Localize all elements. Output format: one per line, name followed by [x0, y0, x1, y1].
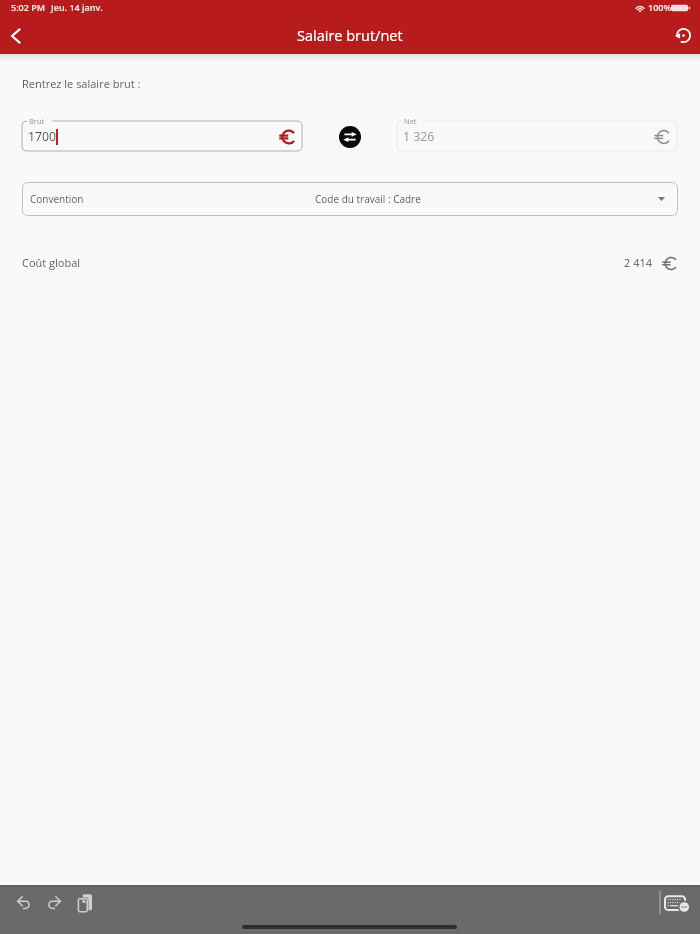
button[interactable]: Swap brut and net [339, 126, 361, 148]
staticText: Convention [30, 192, 84, 206]
staticText: 1 326 [403, 128, 435, 145]
button[interactable]: Undo [10, 889, 38, 917]
button[interactable]: Clipboard [71, 889, 99, 917]
staticText: Code du travail : Cadre [315, 192, 421, 206]
staticText: 5:02 PM [11, 1, 46, 13]
staticText: Salaire brut/net [297, 26, 403, 46]
staticText: Brut [29, 116, 45, 126]
button[interactable]: Redo [40, 889, 68, 917]
button[interactable]: Switch keyboard [663, 890, 691, 916]
staticText: Net [404, 116, 417, 126]
staticText: Rentrez le salaire brut : [22, 76, 141, 91]
staticText: 1700 [28, 128, 57, 145]
button[interactable]: History [669, 21, 698, 50]
button[interactable]: Convention [22, 182, 678, 216]
staticText: Coût global [22, 255, 81, 270]
staticText: 100% [648, 1, 672, 13]
staticText: Jeu. 14 janv. [51, 1, 103, 13]
button[interactable]: Back [0, 19, 34, 53]
staticText: 2 414 [624, 255, 653, 270]
